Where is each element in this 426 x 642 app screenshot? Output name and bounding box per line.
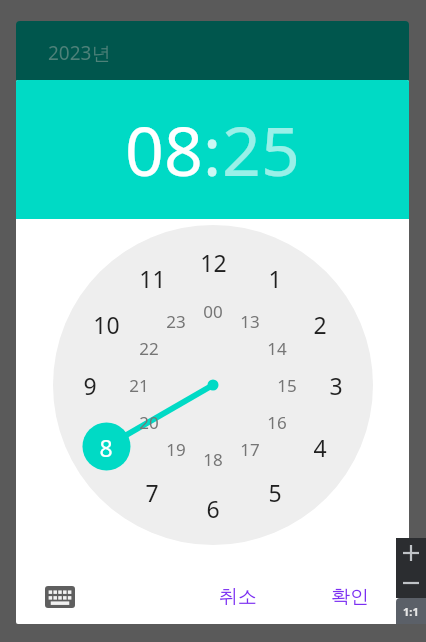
staticText: :	[203, 103, 222, 196]
staticText: 7	[145, 477, 159, 508]
staticText: 16	[267, 411, 287, 434]
staticText: 4	[313, 432, 327, 463]
staticText: 6	[206, 493, 220, 524]
staticText: 18	[203, 448, 223, 471]
staticText: 21	[129, 374, 149, 397]
staticText: 9	[83, 370, 97, 401]
staticText: 20	[139, 411, 159, 434]
staticText: 00	[203, 300, 223, 323]
staticText: 12	[200, 247, 227, 278]
button[interactable]: 25	[222, 103, 300, 196]
staticText: 5	[268, 477, 282, 508]
staticText: 13	[240, 310, 260, 333]
staticText: 25	[222, 103, 300, 196]
staticText: 1	[268, 263, 282, 294]
button[interactable]: 1:1	[396, 598, 426, 624]
button[interactable]: 확인	[315, 577, 385, 617]
staticText: 8	[99, 432, 113, 463]
button[interactable]: Zoom out	[396, 568, 426, 598]
staticText: 11	[139, 263, 166, 294]
staticText: 확인	[331, 585, 369, 609]
staticText: 10	[93, 309, 120, 340]
staticText: 17	[240, 438, 260, 461]
button[interactable]: Switch to text input	[40, 577, 80, 617]
staticText: 1월 7일 (토)	[48, 70, 227, 116]
staticText: 2	[313, 309, 327, 340]
button[interactable]: 취소	[203, 577, 273, 617]
staticText: 3	[329, 370, 343, 401]
staticText: 22	[139, 337, 159, 360]
button[interactable]: 08	[125, 103, 203, 196]
staticText: 19	[166, 438, 186, 461]
button[interactable]: Clock face, hour selection	[53, 225, 373, 545]
button[interactable]: Zoom in	[396, 538, 426, 568]
staticText: 14	[267, 337, 287, 360]
staticText: 2023년	[48, 40, 111, 66]
staticText: 15	[277, 374, 297, 397]
staticText: 취소	[219, 585, 257, 609]
staticText: 08	[125, 103, 203, 196]
staticText: 23	[166, 310, 186, 333]
staticText: 1:1	[403, 604, 419, 619]
